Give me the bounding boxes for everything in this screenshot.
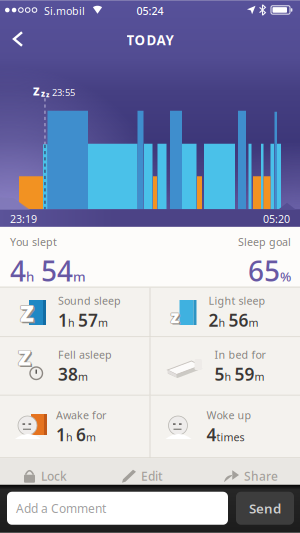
staticText: Sleep goal <box>238 235 291 249</box>
staticText: h <box>66 430 76 444</box>
staticText: You slept <box>10 235 57 249</box>
staticText: 1 <box>56 423 66 446</box>
staticText: Si.mobil <box>44 4 85 18</box>
staticText: h <box>218 316 228 330</box>
staticText: Edit <box>141 468 163 484</box>
staticText: Z <box>21 298 35 328</box>
staticText: Lock <box>41 468 67 484</box>
staticText: Z <box>18 343 31 371</box>
staticText: Z <box>19 345 32 373</box>
staticText: z <box>170 304 179 327</box>
staticText: 38 <box>58 363 78 386</box>
staticText: h <box>68 316 78 330</box>
staticText: 1 <box>58 309 68 332</box>
staticText: m <box>86 430 96 444</box>
staticText: 54 <box>34 252 73 289</box>
staticText: Z <box>18 342 31 371</box>
staticText: 65 <box>248 252 280 289</box>
staticText: Z <box>20 297 34 327</box>
staticText: h <box>224 370 234 384</box>
staticText: z <box>41 88 45 99</box>
staticText: 23:19 <box>10 212 37 226</box>
staticText: 23:55 <box>52 86 75 99</box>
staticText: Add a Comment <box>16 500 106 516</box>
button[interactable]: Back <box>0 23 36 55</box>
staticText: Share <box>244 468 278 484</box>
staticText: 59 <box>234 363 254 386</box>
staticText: 56 <box>228 309 248 332</box>
staticText: z <box>171 305 180 328</box>
staticText: z <box>170 305 179 328</box>
staticText: h <box>26 267 34 285</box>
staticText: Z <box>18 344 31 372</box>
button[interactable]: Add a Comment <box>7 492 228 525</box>
staticText: m <box>254 370 264 384</box>
staticText: Send <box>249 499 281 517</box>
staticText: Awake for <box>56 408 106 422</box>
button[interactable]: Share <box>224 464 278 488</box>
staticText: z <box>170 305 179 328</box>
staticText: Z <box>19 343 32 371</box>
staticText: z <box>172 306 181 329</box>
staticText: 4 <box>10 252 26 289</box>
staticText: Z <box>20 299 34 329</box>
staticText: m <box>98 316 108 330</box>
staticText: Z <box>17 343 30 371</box>
staticText: Woke up <box>206 408 251 422</box>
button[interactable]: Edit <box>122 464 163 488</box>
staticText: 2 <box>208 309 218 332</box>
staticText: Z <box>21 299 35 329</box>
staticText: 57 <box>78 309 98 332</box>
staticText: Fell asleep <box>58 347 112 362</box>
staticText: Z <box>33 84 40 98</box>
staticText: z <box>46 90 49 99</box>
staticText: 05:24 <box>136 4 163 18</box>
staticText: % <box>280 267 291 285</box>
staticText: 05:20 <box>263 212 290 226</box>
staticText: m <box>78 370 88 384</box>
button[interactable]: Lock <box>24 464 67 488</box>
staticText: Z <box>19 298 33 328</box>
staticText: In bed for <box>214 347 265 362</box>
staticText: TODAY <box>126 31 173 49</box>
staticText: 6 <box>76 423 86 446</box>
staticText: Sound sleep <box>58 293 121 308</box>
button[interactable]: Send <box>236 492 294 525</box>
staticText: 4 <box>206 423 216 446</box>
staticText: 5 <box>214 363 224 386</box>
staticText: m <box>248 316 258 330</box>
staticText: m <box>73 267 86 285</box>
staticText: Z <box>20 298 34 328</box>
staticText: Light sleep <box>208 293 265 308</box>
staticText: times <box>216 430 244 444</box>
staticText: z <box>170 306 179 329</box>
